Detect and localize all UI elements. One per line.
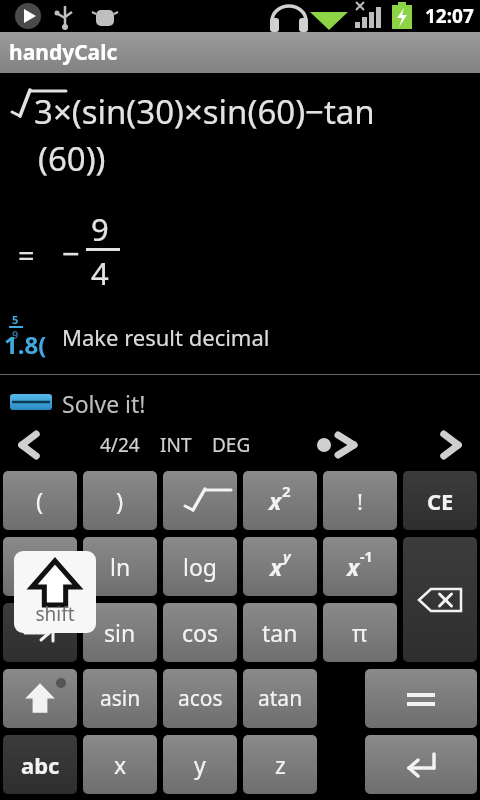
staticText: x <box>269 485 282 516</box>
button[interactable]: ! <box>323 471 397 530</box>
button[interactable]: Previous <box>2 424 56 466</box>
staticText: ! <box>357 486 363 516</box>
button[interactable]: atan <box>243 669 317 728</box>
button[interactable]: ln <box>83 537 157 596</box>
staticText: x <box>347 551 360 582</box>
staticText: asin <box>100 684 141 713</box>
button[interactable]: y <box>163 735 237 794</box>
staticText: z <box>275 749 286 780</box>
staticText: DEG <box>212 432 251 458</box>
staticText: π <box>352 617 368 648</box>
staticText: CE <box>427 486 454 516</box>
button[interactable]: x <box>243 537 317 596</box>
button[interactable]: asin <box>83 669 157 728</box>
staticText: 9 <box>12 327 19 342</box>
staticText: tan <box>262 617 298 648</box>
button[interactable]: Skip forward <box>305 424 371 466</box>
button[interactable]: Next <box>424 424 478 466</box>
staticText: 4/24 <box>100 432 140 458</box>
staticText: y <box>194 749 206 780</box>
button[interactable]: Shift <box>3 669 77 728</box>
staticText: Make result decimal <box>62 322 270 352</box>
staticText: 12:07 <box>425 3 474 29</box>
button[interactable]: x <box>243 471 317 530</box>
staticText: ln <box>110 551 131 582</box>
staticText: handyCalc <box>9 38 118 67</box>
staticText: 1.8( <box>4 328 47 361</box>
button[interactable]: 5 <box>0 308 480 366</box>
staticText: sin <box>104 617 136 648</box>
staticText: 4 <box>91 252 109 294</box>
button[interactable]: x <box>83 735 157 794</box>
staticText: cos <box>182 617 218 648</box>
button[interactable]: ( <box>3 471 77 530</box>
staticText: y <box>283 546 291 566</box>
staticText: INT <box>160 432 192 458</box>
button[interactable]: Backspace <box>403 537 477 662</box>
button[interactable]: sin <box>83 603 157 662</box>
button[interactable]: log <box>163 537 237 596</box>
staticText: abc <box>21 750 60 780</box>
staticText: acos <box>178 684 223 713</box>
staticText: x <box>114 749 127 780</box>
staticText: shift <box>35 601 75 627</box>
button[interactable]: Tab <box>3 603 77 662</box>
button[interactable]: π <box>323 603 397 662</box>
button[interactable]: x <box>323 537 397 596</box>
button[interactable]: Square root <box>163 471 237 530</box>
staticText: x <box>270 551 283 582</box>
button[interactable]: Solve it! <box>0 382 480 424</box>
staticText: (60)) <box>38 136 106 181</box>
staticText: 5 <box>12 312 19 327</box>
button[interactable]: acos <box>163 669 237 728</box>
button[interactable]: Equals <box>365 669 477 728</box>
staticText: ( <box>36 484 44 517</box>
button[interactable]: Enter <box>365 735 477 794</box>
staticText: − <box>62 232 80 274</box>
staticText: ) <box>116 484 124 517</box>
button[interactable]: ) <box>83 471 157 530</box>
button[interactable]: abc <box>3 735 77 794</box>
staticText: atan <box>258 684 303 713</box>
button[interactable]: cos <box>163 603 237 662</box>
staticText: 3×(sin(30)×sin(60)−tan <box>34 89 375 134</box>
button[interactable]: CE <box>403 471 477 530</box>
button[interactable]: z <box>243 735 317 794</box>
button[interactable]: Shift <box>3 537 77 596</box>
staticText: 2 <box>282 481 291 501</box>
staticText: log <box>183 551 217 582</box>
button[interactable]: Shift <box>14 551 96 633</box>
staticText: 9 <box>91 208 109 250</box>
button[interactable]: tan <box>243 603 317 662</box>
staticText: -1 <box>360 547 373 566</box>
staticText: Solve it! <box>62 388 146 419</box>
staticText: = <box>18 235 35 274</box>
